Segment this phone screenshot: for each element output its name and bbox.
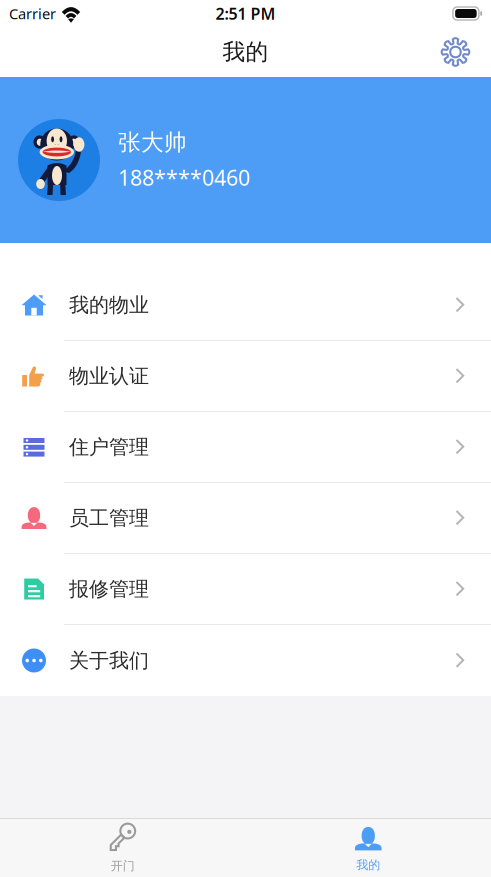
staticText: 2:51 PM — [215, 3, 275, 24]
staticText: 我的物业 — [69, 293, 149, 317]
staticText: 张大帅 — [118, 128, 187, 156]
staticText: 物业认证 — [69, 364, 149, 388]
staticText: 我的 — [222, 38, 268, 66]
staticText: 住户管理 — [69, 435, 149, 459]
staticText: 188****0460 — [118, 163, 250, 192]
staticText: Carrier — [9, 4, 56, 23]
button[interactable]: 关于我们 — [0, 625, 491, 696]
button[interactable]: 我的物业 — [0, 270, 491, 341]
staticText: 关于我们 — [69, 648, 149, 673]
button[interactable]: 住户管理 — [0, 412, 491, 483]
button[interactable]: 我的 — [245, 820, 491, 876]
button[interactable]: Settings — [434, 30, 477, 73]
button[interactable]: 报修管理 — [0, 554, 491, 625]
button[interactable]: 物业认证 — [0, 341, 491, 412]
button[interactable]: 员工管理 — [0, 483, 491, 554]
staticText: 开门 — [111, 859, 135, 873]
staticText: 报修管理 — [69, 577, 149, 601]
staticText: 员工管理 — [69, 506, 149, 530]
staticText: 我的 — [356, 858, 380, 872]
button[interactable]: 开门 — [0, 819, 245, 877]
